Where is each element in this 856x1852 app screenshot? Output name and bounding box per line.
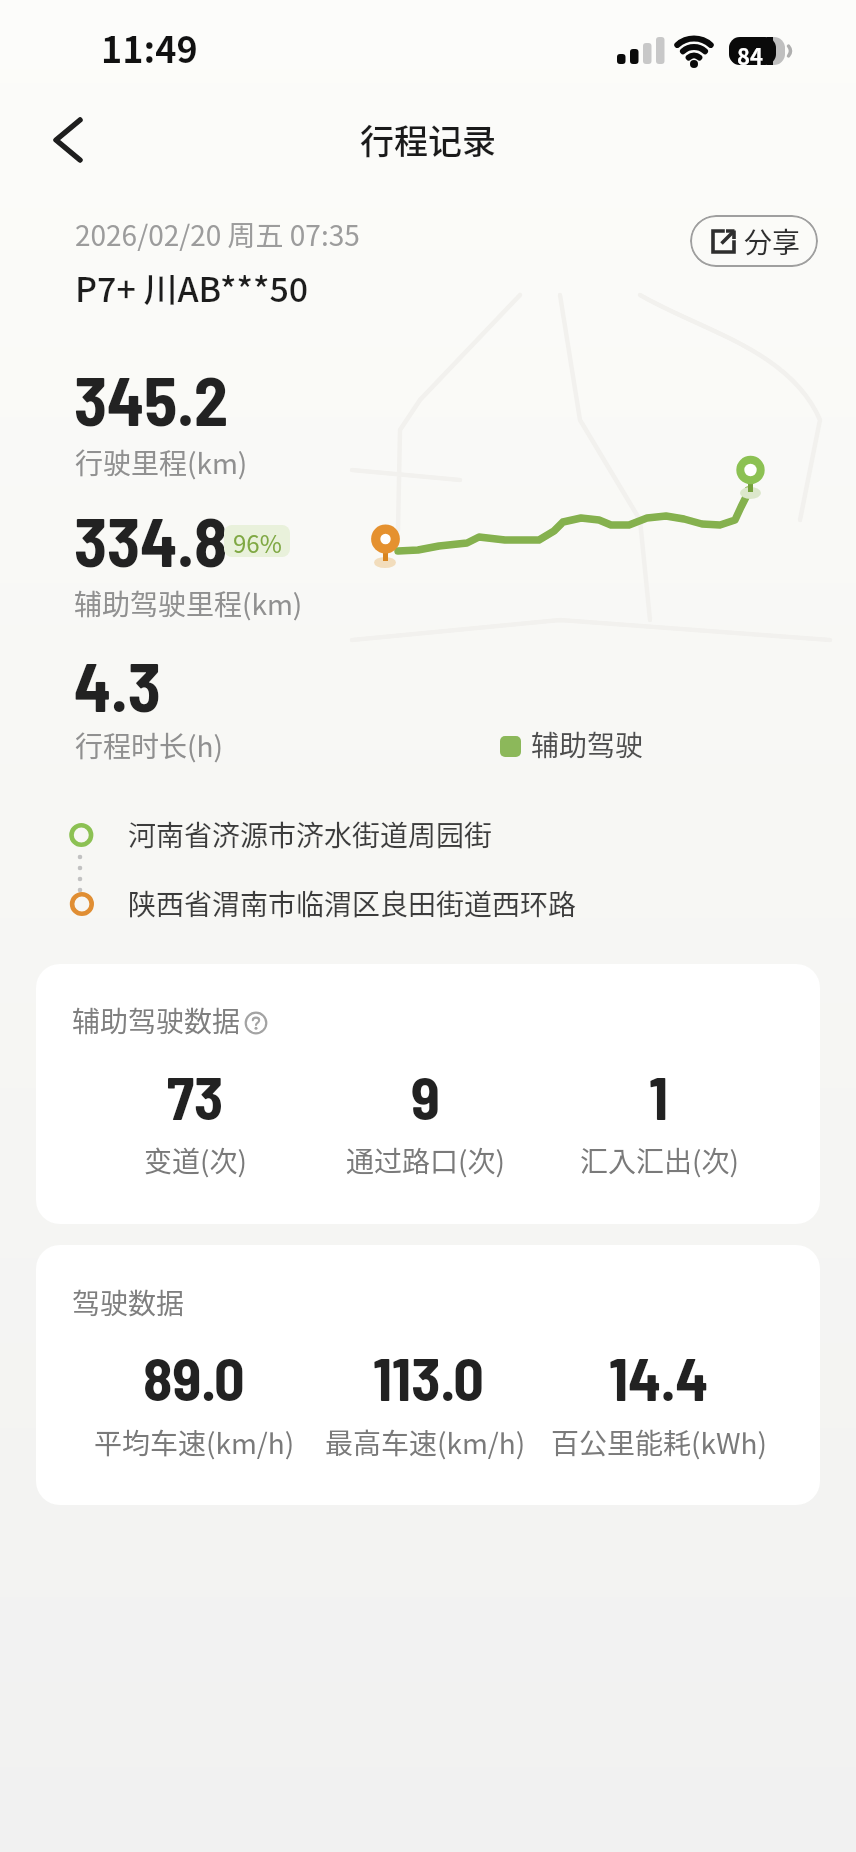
button[interactable]: 辅助驾驶数据 — [36, 964, 820, 1224]
staticText: 4.3 — [74, 644, 161, 726]
button[interactable] — [42, 113, 98, 169]
staticText: 平均车速(km/h) — [94, 1422, 295, 1463]
staticText: 辅助驾驶数据 — [72, 1000, 241, 1041]
staticText: 变道(次) — [144, 1140, 247, 1181]
staticText: 11:49 — [101, 21, 198, 73]
staticText: 2026/02/20 周五 07:35 — [75, 214, 360, 255]
staticText: 驾驶数据 — [72, 1282, 185, 1323]
staticText: 96% — [233, 525, 282, 557]
staticText: 分享 — [744, 221, 801, 262]
button[interactable]: 分享 — [690, 215, 818, 267]
staticText: 73 — [167, 1060, 224, 1132]
staticText: 89.0 — [143, 1341, 245, 1413]
staticText: 陕西省渭南市临渭区良田街道西环路 — [128, 883, 577, 924]
staticText: 辅助驾驶里程(km) — [74, 583, 303, 624]
staticText: 百公里能耗(kWh) — [551, 1422, 767, 1463]
staticText: 最高车速(km/h) — [325, 1422, 526, 1463]
staticText: 14.4 — [609, 1341, 709, 1413]
staticText: P7+ 川AB***50 — [75, 263, 309, 312]
staticText: 行程记录 — [360, 115, 496, 164]
staticText: 河南省济源市济水街道周园街 — [128, 814, 493, 855]
staticText: 通过路口(次) — [346, 1140, 505, 1181]
staticText: 113.0 — [373, 1341, 484, 1413]
staticText: 汇入汇出(次) — [580, 1140, 739, 1181]
staticText: 84 — [737, 39, 763, 71]
staticText: 345.2 — [74, 358, 229, 440]
staticText: 行驶里程(km) — [75, 442, 248, 483]
staticText: 行程时长(h) — [75, 725, 223, 766]
staticText: 334.8 — [74, 499, 228, 581]
staticText: 辅助驾驶 — [531, 724, 644, 765]
button[interactable]: 驾驶数据 — [36, 1245, 820, 1505]
staticText: 1 — [649, 1060, 669, 1132]
staticText: 9 — [411, 1060, 440, 1132]
